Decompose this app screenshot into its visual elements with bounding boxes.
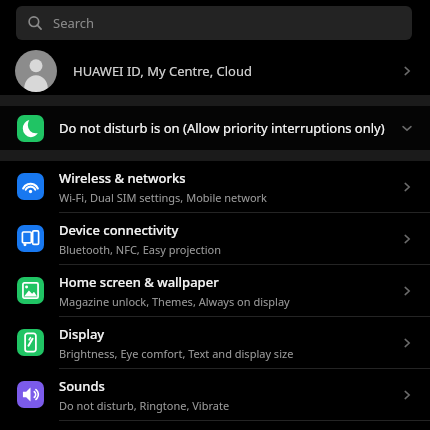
staticText: Brightness, Eye comfort, Text and displa… [59, 346, 294, 361]
staticText: Wi-Fi, Dual SIM settings, Mobile network [59, 190, 267, 205]
button[interactable]: Sounds [0, 369, 430, 420]
button[interactable]: Display [0, 317, 430, 368]
staticText: Home screen & wallpaper [59, 273, 219, 291]
button[interactable]: Wireless & networks [0, 161, 430, 212]
staticText: Do not disturb, Ringtone, Vibrate [59, 398, 230, 413]
button[interactable]: Home screen & wallpaper [0, 265, 430, 316]
staticText: Do not disturb is on (Allow priority int… [59, 119, 394, 137]
button[interactable]: Do not disturb is on (Allow priority int… [0, 106, 430, 150]
staticText: Wireless & networks [59, 169, 186, 187]
button[interactable]: HUAWEI ID, My Centre, Cloud [0, 46, 430, 95]
staticText: Display [59, 325, 105, 343]
button[interactable]: Device connectivity [0, 213, 430, 264]
staticText: HUAWEI ID, My Centre, Cloud [73, 62, 398, 80]
staticText: Sounds [59, 377, 105, 395]
staticText: Magazine unlock, Themes, Always on displ… [59, 294, 290, 309]
staticText: Search [53, 14, 95, 32]
button[interactable]: Search [16, 6, 412, 40]
staticText: Device connectivity [59, 221, 179, 239]
staticText: Bluetooth, NFC, Easy projection [59, 242, 222, 257]
